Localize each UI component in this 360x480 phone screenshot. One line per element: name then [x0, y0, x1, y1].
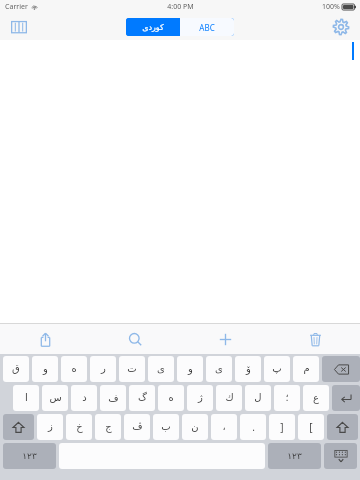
button[interactable]: ١٢٣	[268, 443, 321, 469]
button[interactable]: گ	[129, 385, 155, 411]
staticText: م	[303, 363, 310, 375]
button[interactable]: و	[32, 356, 58, 382]
staticText: ؛	[285, 392, 289, 404]
staticText: س	[49, 392, 62, 404]
button[interactable]: ه	[158, 385, 184, 411]
staticText: پ	[272, 363, 282, 375]
button[interactable]: Search	[90, 324, 180, 354]
staticText: [	[309, 420, 313, 434]
staticText: ی	[215, 363, 223, 375]
button[interactable]: ع	[303, 385, 329, 411]
button[interactable]: Backspace	[322, 356, 360, 382]
button[interactable]: ژ	[187, 385, 213, 411]
staticText: ا	[25, 392, 28, 404]
button[interactable]: ۆ	[235, 356, 261, 382]
button[interactable]: ABC	[180, 18, 234, 36]
button[interactable]: [	[298, 414, 324, 440]
button[interactable]: ز	[37, 414, 63, 440]
staticText: ن	[191, 421, 199, 433]
staticText: ت	[127, 363, 137, 375]
button[interactable]: Hide keyboard	[324, 443, 357, 469]
button[interactable]: ]	[269, 414, 295, 440]
button[interactable]: م	[293, 356, 319, 382]
staticText: ،	[222, 421, 226, 433]
button[interactable]: Shift	[327, 414, 358, 440]
staticText: ڤ	[132, 421, 143, 433]
staticText: ژ	[198, 392, 203, 404]
button[interactable]: ا	[13, 385, 39, 411]
button[interactable]: ف	[100, 385, 126, 411]
button[interactable]: ی	[206, 356, 232, 382]
button[interactable]: ڤ	[124, 414, 150, 440]
staticText: كوردی	[142, 23, 164, 32]
button[interactable]: ق	[3, 356, 29, 382]
button[interactable]: كوردی	[126, 18, 180, 36]
staticText: ج	[105, 421, 112, 433]
button[interactable]: ؛	[274, 385, 300, 411]
button[interactable]: Delete	[270, 324, 360, 354]
staticText: ی	[157, 363, 165, 375]
button[interactable]: Share	[0, 324, 90, 354]
staticText: ك	[225, 392, 234, 404]
button[interactable]: ت	[119, 356, 145, 382]
staticText: و	[43, 363, 48, 375]
button[interactable]: د	[71, 385, 97, 411]
staticText: ر	[101, 363, 106, 375]
button[interactable]: ه	[61, 356, 87, 382]
staticText: ١٢٣	[22, 451, 37, 461]
button[interactable]: س	[42, 385, 68, 411]
staticText: ع	[313, 392, 319, 404]
staticText: 4:00 PM	[167, 2, 194, 12]
staticText: ل	[254, 392, 262, 404]
staticText: ه	[168, 392, 174, 404]
staticText: ۆ	[246, 363, 251, 375]
button[interactable]: Library	[8, 16, 30, 38]
button[interactable]: Return	[332, 385, 360, 411]
button[interactable]: .	[240, 414, 266, 440]
staticText: .	[252, 420, 255, 434]
button[interactable]: Add	[180, 324, 270, 354]
button[interactable]: Shift	[3, 414, 34, 440]
staticText: ق	[12, 363, 20, 375]
button[interactable]: ل	[245, 385, 271, 411]
button[interactable]: و	[177, 356, 203, 382]
button[interactable]: ك	[216, 385, 242, 411]
button[interactable]: ب	[153, 414, 179, 440]
button[interactable]: ج	[95, 414, 121, 440]
staticText: د	[82, 392, 87, 404]
button[interactable]: ١٢٣	[3, 443, 56, 469]
staticText: Carrier	[5, 2, 28, 12]
staticText: ١٢٣	[287, 451, 302, 461]
button[interactable]: ن	[182, 414, 208, 440]
staticText: و	[188, 363, 193, 375]
staticText: ب	[161, 421, 171, 433]
staticText: ه	[71, 363, 77, 375]
staticText: گ	[138, 392, 147, 404]
staticText: ]	[280, 420, 284, 434]
button[interactable]: ،	[211, 414, 237, 440]
button[interactable]: خ	[66, 414, 92, 440]
button[interactable]: ر	[90, 356, 116, 382]
staticText: 100%	[322, 2, 340, 12]
button[interactable]: Settings	[330, 16, 352, 38]
staticText: ف	[108, 392, 119, 404]
button[interactable]: پ	[264, 356, 290, 382]
button[interactable]: ی	[148, 356, 174, 382]
staticText: ز	[48, 421, 53, 433]
staticText: خ	[76, 421, 83, 433]
staticText: ABC	[199, 22, 215, 33]
